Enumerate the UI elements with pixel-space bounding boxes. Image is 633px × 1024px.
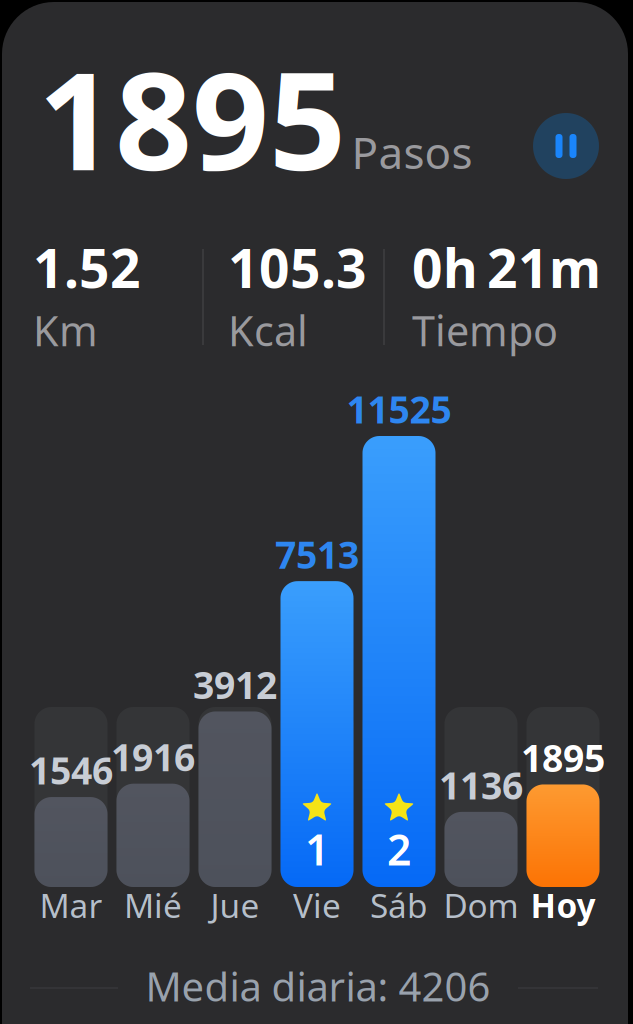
staticText: 2	[387, 821, 411, 877]
button[interactable]: Pause	[529, 109, 603, 183]
staticText: 1895	[521, 733, 605, 782]
staticText: 0h 21m	[412, 232, 601, 303]
staticText: Mié	[124, 883, 182, 927]
button[interactable]: Mié	[112, 707, 193, 924]
staticText: Jue	[210, 883, 259, 927]
staticText: 1.52	[33, 232, 141, 303]
staticText: Media diaria: 4206	[145, 959, 490, 1012]
staticText: 105.3	[228, 232, 367, 303]
staticText: 11525	[346, 384, 451, 434]
staticText: 3912	[193, 660, 277, 709]
button[interactable]: Jue	[194, 667, 275, 924]
staticText: Vie	[293, 883, 341, 927]
staticText: Hoy	[530, 883, 595, 927]
button[interactable]: Vie	[276, 537, 357, 924]
staticText: Dom	[443, 883, 518, 927]
staticText: Km	[33, 303, 98, 358]
staticText: 1546	[29, 745, 113, 795]
staticText: Pasos	[351, 123, 472, 181]
staticText: 7513	[275, 529, 359, 579]
staticText: Tiempo	[412, 303, 558, 358]
staticText: Mar	[39, 883, 102, 927]
button[interactable]: Mar	[30, 707, 111, 924]
staticText: 1136	[439, 760, 523, 810]
staticText: Kcal	[228, 303, 308, 358]
staticText: 1916	[111, 732, 195, 781]
button[interactable]: Sáb	[358, 392, 439, 924]
button[interactable]: Dom	[440, 707, 521, 924]
button[interactable]: Hoy	[522, 707, 603, 924]
staticText: Sáb	[370, 883, 428, 927]
staticText: 1895	[38, 29, 346, 207]
staticText: 1	[305, 821, 329, 877]
